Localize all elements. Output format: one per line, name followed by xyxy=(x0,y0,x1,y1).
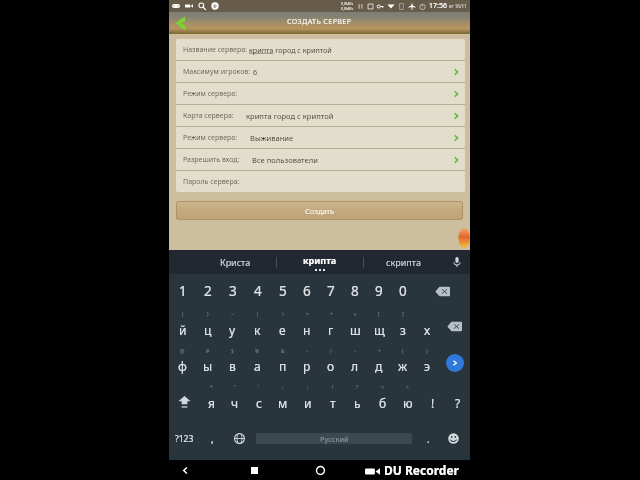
button[interactable]: < xyxy=(370,381,395,419)
button[interactable]: Режим сервера: xyxy=(176,127,465,149)
staticText: | xyxy=(256,311,259,318)
button[interactable]: . xyxy=(420,419,437,458)
button[interactable]: Название сервера: xyxy=(176,39,465,61)
button[interactable]: ) xyxy=(195,308,220,345)
button[interactable]: \ xyxy=(270,308,295,345)
button[interactable]: 8 xyxy=(343,274,367,308)
button[interactable]: ! xyxy=(420,381,445,419)
staticText: + xyxy=(378,348,381,355)
button[interactable]: х xyxy=(415,308,439,345)
staticText: ?123 xyxy=(175,433,194,445)
button[interactable]: Voice input xyxy=(443,250,470,274)
button[interactable]: Enter xyxy=(439,345,470,381)
button[interactable]: + xyxy=(319,308,343,345)
button[interactable]: > xyxy=(395,381,420,419)
staticText: @ xyxy=(180,348,185,355)
button[interactable]: Пароль сервера: xyxy=(176,171,465,192)
staticText: 3 xyxy=(229,282,237,300)
button[interactable]: ? xyxy=(445,381,470,419)
button[interactable]: = xyxy=(295,308,319,345)
button[interactable]: 0 xyxy=(391,274,415,308)
staticText: в xyxy=(229,358,236,374)
button[interactable]: Карта сервера: xyxy=(176,105,465,127)
staticText: / xyxy=(330,348,332,355)
staticText: т xyxy=(330,395,336,411)
button[interactable]: ~ xyxy=(220,308,245,345)
button[interactable]: Создать xyxy=(177,202,462,219)
button[interactable]: ( xyxy=(391,345,415,381)
staticText: [ xyxy=(378,311,380,318)
staticText: ш xyxy=(350,322,361,338)
button[interactable]: ; xyxy=(295,381,320,419)
button[interactable]: Backspace xyxy=(439,308,470,345)
staticText: ( xyxy=(402,348,404,355)
button[interactable]: @ xyxy=(170,345,195,381)
button[interactable]: Backspace xyxy=(415,274,470,308)
button[interactable]: крипта xyxy=(277,250,363,274)
button[interactable]: 3 xyxy=(220,274,245,308)
button[interactable]: ) xyxy=(415,345,439,381)
staticText: + xyxy=(330,311,333,318)
button[interactable]: Change language xyxy=(224,419,254,458)
button[interactable]: Русский xyxy=(256,433,412,444)
button[interactable]: $ xyxy=(220,345,245,381)
button[interactable]: [ xyxy=(367,308,391,345)
staticText: г xyxy=(328,322,334,338)
staticText: н xyxy=(303,322,311,338)
button[interactable]: Максимум игроков: xyxy=(176,61,465,83)
staticText: ' xyxy=(258,384,260,391)
button[interactable]: Back xyxy=(172,13,188,33)
button[interactable]: & xyxy=(270,345,295,381)
button[interactable]: - xyxy=(343,345,367,381)
button[interactable]: скрипта xyxy=(364,250,443,274)
button[interactable]: 7 xyxy=(319,274,343,308)
button[interactable]: 2 xyxy=(195,274,220,308)
staticText: # xyxy=(206,348,210,355)
staticText: 5 xyxy=(279,282,287,300)
staticText: м xyxy=(278,395,288,411)
button[interactable]: ' xyxy=(247,381,271,419)
button[interactable]: 5 xyxy=(270,274,295,308)
staticText: Разрешить вход: xyxy=(183,155,240,165)
button[interactable]: ! xyxy=(320,381,345,419)
staticText: 2 xyxy=(204,282,212,300)
button[interactable]: ? xyxy=(345,381,370,419)
staticText: , xyxy=(211,432,214,446)
button[interactable]: ( xyxy=(170,308,195,345)
button[interactable]: 9 xyxy=(367,274,391,308)
button[interactable]: : xyxy=(271,381,295,419)
staticText: ь xyxy=(354,395,361,411)
staticText: . xyxy=(427,432,430,446)
button[interactable]: + xyxy=(367,345,391,381)
button[interactable]: % xyxy=(245,345,270,381)
button[interactable]: Home xyxy=(244,460,264,480)
button[interactable]: Back xyxy=(175,460,195,480)
button[interactable]: , xyxy=(200,419,224,458)
staticText: ч xyxy=(231,395,239,411)
button[interactable]: / xyxy=(319,345,343,381)
button[interactable]: » xyxy=(343,308,367,345)
button[interactable]: Shift xyxy=(170,381,199,419)
staticText: ) xyxy=(207,311,209,318)
button[interactable]: 1 xyxy=(170,274,195,308)
staticText: ф xyxy=(178,358,187,374)
button[interactable]: Криста xyxy=(169,250,276,274)
button[interactable]: * xyxy=(199,381,223,419)
staticText: 6 xyxy=(303,282,311,300)
button[interactable]: " xyxy=(223,381,247,419)
button[interactable]: 6 xyxy=(295,274,319,308)
staticText: \ xyxy=(282,311,284,318)
staticText: крипта xyxy=(303,254,337,266)
button[interactable]: Emoji xyxy=(437,419,470,458)
button[interactable]: # xyxy=(195,345,220,381)
button[interactable]: Режим сервера: xyxy=(176,83,465,105)
button[interactable]: Recents xyxy=(310,460,330,480)
button[interactable]: | xyxy=(245,308,270,345)
button[interactable]: Recorder controls xyxy=(462,228,470,248)
button[interactable]: ?123 xyxy=(169,419,200,458)
button[interactable]: 4 xyxy=(245,274,270,308)
staticText: вт 16/11 xyxy=(449,3,467,9)
button[interactable]: ] xyxy=(391,308,415,345)
button[interactable]: - xyxy=(295,345,319,381)
button[interactable]: Разрешить вход: xyxy=(176,149,465,171)
